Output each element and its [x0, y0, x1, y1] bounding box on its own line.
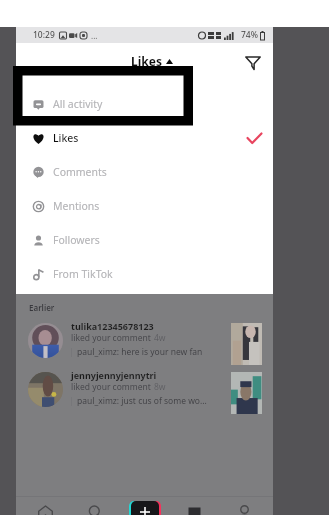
button[interactable]: Create — [124, 497, 166, 515]
staticText: Followers — [53, 233, 100, 247]
button[interactable]: Inbox — [173, 497, 215, 515]
button[interactable]: jennyjennyjennytri — [16, 370, 273, 420]
staticText: paul_ximz: just cus of some wo... — [77, 395, 207, 407]
button[interactable]: Likes — [16, 121, 273, 155]
staticText: paul_ximz: here is your new fan — [77, 346, 203, 358]
button[interactable]: Filter — [242, 52, 264, 74]
staticText: tulika12345678123 — [71, 320, 154, 332]
button[interactable]: Home — [24, 497, 66, 515]
button[interactable]: Mentions — [16, 189, 273, 223]
staticText: Mentions — [53, 199, 100, 213]
staticText: Likes — [53, 131, 79, 145]
staticText: Earlier — [29, 302, 55, 313]
button[interactable]: From TikTok — [16, 257, 273, 291]
staticText: 10:29 — [33, 29, 55, 41]
button[interactable]: Likes — [131, 53, 173, 69]
button[interactable]: Followers — [16, 223, 273, 257]
button[interactable]: tulika12345678123 — [16, 321, 273, 371]
button[interactable]: Search — [74, 497, 116, 515]
staticText: Comments — [53, 165, 107, 179]
staticText: ... — [91, 30, 98, 41]
staticText: jennyjennyjennytri — [71, 369, 157, 381]
staticText: 74% — [241, 29, 258, 41]
staticText: liked your comment — [71, 332, 151, 344]
staticText: All activity — [53, 97, 103, 111]
button[interactable]: Profile — [223, 497, 265, 515]
button[interactable]: Comments — [16, 155, 273, 189]
staticText: From TikTok — [53, 267, 113, 281]
staticText: Likes — [131, 53, 162, 69]
button[interactable]: All activity — [16, 87, 273, 121]
staticText: 8w — [154, 381, 166, 393]
staticText: 4w — [154, 332, 166, 344]
staticText: liked your comment — [71, 381, 151, 393]
